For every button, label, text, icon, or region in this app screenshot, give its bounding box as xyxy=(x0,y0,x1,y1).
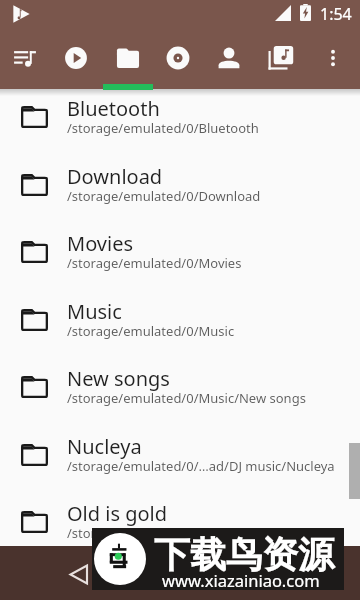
button[interactable]: Library xyxy=(257,28,305,84)
button[interactable]: Bluetooth xyxy=(0,83,360,151)
staticText: /storage/emulated/0/Music/Old is gold xyxy=(67,524,305,542)
staticText: 下载鸟资源 xyxy=(154,532,334,577)
staticText: Old is gold xyxy=(67,500,168,527)
staticText: Download xyxy=(67,163,163,190)
staticText: www.xiazainiao.com xyxy=(162,569,320,591)
button[interactable]: Back xyxy=(67,562,92,587)
staticText: Music xyxy=(67,298,122,325)
button[interactable]: Movies xyxy=(0,218,360,286)
staticText: Bluetooth xyxy=(67,95,160,122)
staticText: /storage/emulated/0/Movies xyxy=(67,254,242,272)
button[interactable]: Albums xyxy=(154,28,202,84)
staticText: /storage/emulated/0/Music/New songs xyxy=(67,389,306,407)
button[interactable]: Download xyxy=(0,151,360,219)
staticText: New songs xyxy=(67,365,170,392)
button[interactable]: More options xyxy=(309,28,357,84)
staticText: Nucleya xyxy=(67,433,142,460)
button[interactable]: Nucleya xyxy=(0,421,360,489)
button[interactable]: Music xyxy=(0,286,360,354)
staticText: /storage/emulated/0/Music xyxy=(67,322,235,340)
staticText: 1:54 xyxy=(320,3,352,25)
button[interactable]: Folders xyxy=(104,28,152,84)
button[interactable]: Artists xyxy=(205,28,253,84)
button[interactable]: Playlists xyxy=(1,28,49,84)
staticText: /storage/emulated/0/Download xyxy=(67,187,261,205)
button[interactable]: Old is gold xyxy=(0,488,360,556)
staticText: Movies xyxy=(67,230,134,257)
staticText: /storage/emulated/0/…ad/DJ music/Nucleya xyxy=(67,457,335,475)
button[interactable]: New songs xyxy=(0,353,360,421)
button[interactable]: Songs xyxy=(52,28,100,84)
staticText: /storage/emulated/0/Bluetooth xyxy=(67,119,259,137)
